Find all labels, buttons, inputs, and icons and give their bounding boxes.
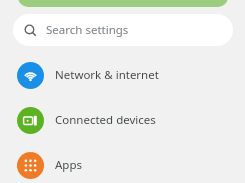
button[interactable]: Connected devices settings bbox=[0, 100, 245, 140]
other: Apps settings bbox=[17, 152, 44, 179]
staticText: Search settings bbox=[46, 22, 129, 38]
button[interactable]: Network and internet settings bbox=[0, 55, 245, 95]
staticText: Network & internet bbox=[55, 67, 159, 83]
button[interactable]: Search settings bbox=[13, 14, 233, 46]
staticText: Apps bbox=[55, 157, 83, 173]
staticText: Connected devices bbox=[55, 112, 156, 128]
button[interactable]: Apps settings bbox=[0, 145, 245, 183]
other: Network and internet settings bbox=[17, 62, 44, 89]
other: Connected devices settings bbox=[17, 107, 44, 134]
